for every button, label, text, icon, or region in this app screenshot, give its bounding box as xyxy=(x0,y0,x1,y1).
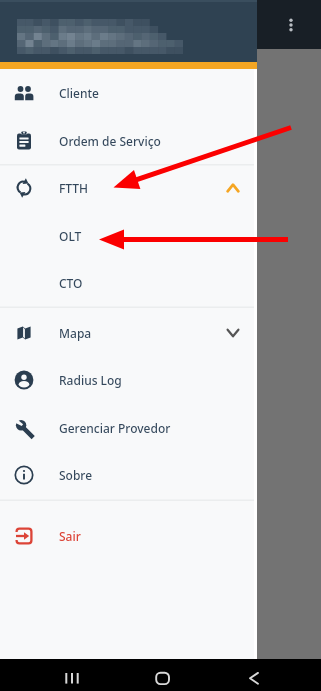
button[interactable]: OLT xyxy=(0,212,257,260)
button[interactable]: More options xyxy=(273,7,309,43)
button[interactable]: Sair xyxy=(0,512,257,560)
button[interactable]: Ordem de Serviço xyxy=(0,117,257,165)
button[interactable]: Home xyxy=(107,659,214,691)
button[interactable]: Cliente xyxy=(0,69,257,117)
button[interactable]: FTTH xyxy=(0,164,257,212)
button[interactable]: Sobre xyxy=(0,451,257,499)
staticText: Sobre xyxy=(59,467,93,483)
staticText: Gerenciar Provedor xyxy=(59,420,171,436)
staticText: CTO xyxy=(59,275,83,291)
button[interactable]: Gerenciar Provedor xyxy=(0,404,257,452)
staticText: Cliente xyxy=(59,85,99,101)
staticText: FTTH xyxy=(59,180,89,196)
staticText: OLT xyxy=(59,228,82,244)
staticText: Ordem de Serviço xyxy=(59,133,161,149)
staticText: Radius Log xyxy=(59,372,122,388)
button[interactable]: CTO xyxy=(0,259,257,307)
button[interactable]: Recents xyxy=(0,659,107,691)
staticText: Mapa xyxy=(59,325,92,341)
staticText: Sair xyxy=(59,528,81,544)
button[interactable]: Radius Log xyxy=(0,356,257,404)
button[interactable]: Mapa xyxy=(0,309,257,357)
button[interactable]: Back xyxy=(214,659,321,691)
